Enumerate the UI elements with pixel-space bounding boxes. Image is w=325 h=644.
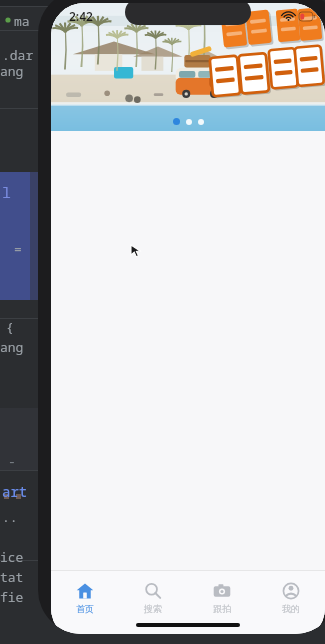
button[interactable] (51, 3, 325, 131)
staticText: l (2, 182, 12, 202)
staticText: 我的 (282, 603, 300, 614)
button[interactable]: 首页 (51, 577, 119, 614)
button[interactable]: 跟拍 (187, 577, 256, 614)
staticText: 搜索 (144, 603, 162, 614)
other: 搜索 (144, 582, 162, 600)
staticText: .dar (2, 46, 34, 64)
other: 跟拍 (213, 582, 231, 600)
staticText: ang (0, 338, 24, 356)
staticText: 2:42 (69, 8, 93, 24)
other: 我的 (282, 582, 300, 600)
staticText: ma (14, 12, 30, 30)
staticText: ang (0, 62, 24, 80)
staticText: { (6, 318, 14, 336)
button[interactable]: 搜索 (119, 577, 187, 614)
other: 首页 (76, 582, 94, 600)
staticText: art (2, 482, 28, 501)
staticText: .. (2, 508, 18, 526)
staticText: 跟拍 (213, 603, 231, 614)
staticText: tat (0, 568, 24, 586)
staticText: fie (0, 588, 24, 606)
staticText: = (14, 240, 22, 258)
staticText: - (8, 452, 16, 470)
staticText: ice (0, 548, 24, 566)
button[interactable]: 我的 (256, 577, 325, 614)
staticText: 首页 (76, 603, 94, 614)
